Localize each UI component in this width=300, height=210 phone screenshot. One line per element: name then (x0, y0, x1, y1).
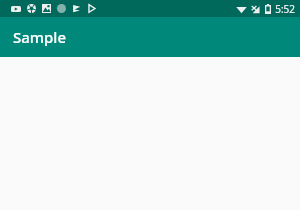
button[interactable]: Sample (0, 17, 300, 57)
staticText: Sample (13, 27, 66, 47)
staticText: 5:52 (275, 2, 295, 16)
